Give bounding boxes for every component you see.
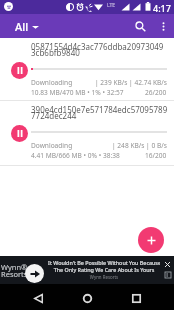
button[interactable]: Recents [125, 287, 147, 309]
staticText: All [15, 19, 29, 34]
staticText: Downloading [31, 141, 73, 150]
button[interactable]: Close ad [163, 260, 172, 269]
staticText: 10.83 MB/470 MB • 1% • 32:57 [31, 88, 124, 97]
button[interactable]: Add download [138, 227, 164, 253]
button[interactable]: Wynn Resorts ad [0, 256, 46, 284]
staticText: | 248 KB/s | 0 B/s [112, 141, 167, 150]
staticText: Wynn® [1, 262, 28, 272]
staticText: LTE [107, 2, 116, 9]
button[interactable]: Home [76, 287, 98, 309]
button[interactable]: Ad choices [163, 270, 172, 279]
staticText: 16/200 [145, 151, 167, 160]
staticText: 4.41 MB/666 MB • 0% • 38:38 [31, 151, 120, 160]
button[interactable]: More options [152, 15, 174, 37]
staticText: 390e4cd150e7e571784edc57095789 [31, 104, 168, 115]
staticText: Downloading [31, 78, 73, 87]
staticText: 4:17 [153, 2, 171, 14]
button[interactable]: Back [27, 287, 49, 309]
staticText: Resorts [1, 269, 28, 279]
staticText: 3cb6bfb9840 [31, 47, 80, 58]
staticText: Wynn Resorts [48, 274, 160, 280]
button[interactable]: Pause [11, 125, 28, 142]
staticText: The Only Rating We Care About Is Yours [48, 266, 160, 273]
staticText: 05871554d4c3ac776ddba20973049 [31, 41, 164, 52]
staticText: 7724dec244 [31, 110, 77, 121]
staticText: | 239 KB/s | 42.74 KB/s [95, 78, 167, 87]
button[interactable]: Pause [11, 62, 28, 79]
button[interactable]: Search [128, 14, 152, 38]
button[interactable]: All [9, 19, 39, 34]
staticText: 26/200 [145, 88, 167, 97]
staticText: It Wouldn't Be Possible Without You Beca… [48, 259, 160, 266]
